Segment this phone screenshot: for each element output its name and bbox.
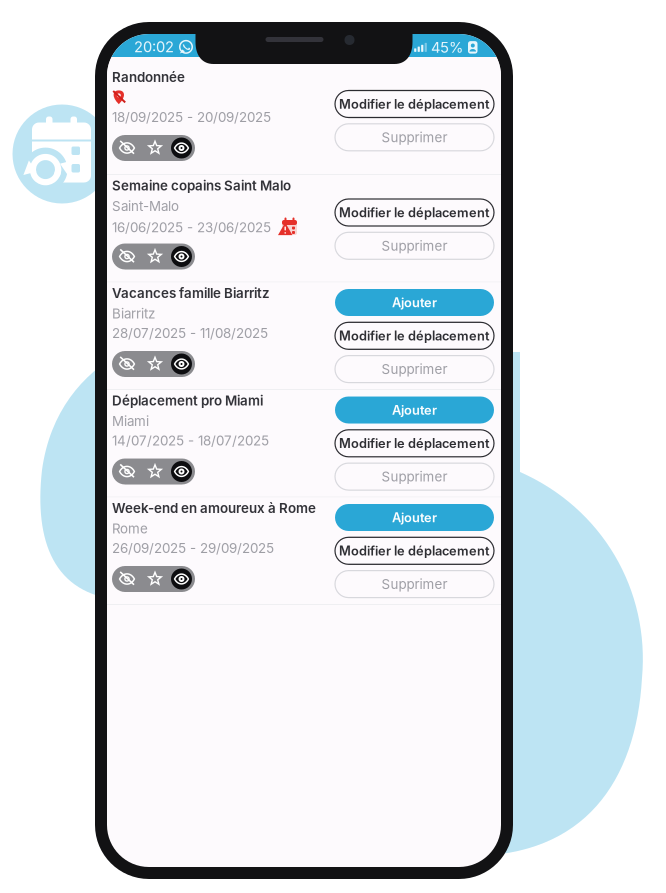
staticText: Modifier le déplacement: [339, 96, 490, 112]
staticText: 18/09/2025 - 20/09/2025: [112, 109, 271, 125]
button[interactable]: Afficher: [168, 458, 195, 484]
staticText: Saint-Malo: [112, 198, 179, 214]
staticText: Biarritz: [112, 305, 155, 322]
button[interactable]: Afficher: [168, 243, 195, 269]
staticText: Modifier le déplacement: [339, 205, 490, 220]
button[interactable]: Favori: [142, 351, 168, 377]
staticText: 45%: [431, 38, 463, 56]
button[interactable]: Modifier le déplacement: [335, 430, 494, 457]
button[interactable]: Ajouter: [335, 289, 494, 316]
button[interactable]: Masquer: [112, 458, 142, 484]
button[interactable]: Modifier le déplacement: [335, 199, 494, 226]
staticText: 20:02: [134, 38, 174, 56]
staticText: Supprimer: [381, 468, 447, 485]
button[interactable]: Masquer: [112, 566, 142, 592]
staticText: Modifier le déplacement: [339, 328, 490, 344]
staticText: Déplacement pro Miami: [112, 392, 263, 409]
button[interactable]: Modifier le déplacement: [335, 537, 494, 564]
staticText: Supprimer: [381, 129, 447, 145]
button[interactable]: Supprimer: [335, 571, 494, 598]
staticText: 16/06/2025 - 23/06/2025: [112, 219, 271, 235]
staticText: 28/07/2025 - 11/08/2025: [112, 325, 268, 341]
staticText: Semaine copains Saint Malo: [112, 177, 291, 194]
staticText: Ajouter: [392, 402, 437, 418]
button[interactable]: Masquer: [112, 351, 142, 377]
button[interactable]: Afficher: [168, 566, 195, 592]
staticText: Modifier le déplacement: [339, 436, 490, 451]
staticText: Modifier le déplacement: [339, 543, 490, 559]
button[interactable]: Supprimer: [335, 356, 494, 383]
button[interactable]: Modifier le déplacement: [335, 322, 494, 349]
button[interactable]: Favori: [142, 566, 168, 592]
staticText: Supprimer: [381, 238, 447, 254]
button[interactable]: Masquer: [112, 243, 142, 269]
staticText: Rome: [112, 520, 148, 537]
staticText: Ajouter: [392, 295, 437, 310]
button[interactable]: Afficher: [168, 351, 195, 377]
staticText: Vacances famille Biarritz: [112, 285, 270, 301]
staticText: Supprimer: [381, 361, 447, 377]
button[interactable]: Supprimer: [335, 232, 494, 259]
button[interactable]: Ajouter: [335, 396, 494, 423]
button[interactable]: Supprimer: [335, 463, 494, 490]
staticText: Randonnée: [112, 69, 185, 85]
staticText: 14/07/2025 - 18/07/2025: [112, 432, 269, 449]
button[interactable]: Supprimer: [335, 124, 494, 151]
button[interactable]: Favori: [142, 458, 168, 484]
button[interactable]: Modifier le déplacement: [335, 90, 494, 117]
staticText: Week-end en amoureux à Rome: [112, 500, 316, 516]
button[interactable]: Ajouter: [335, 504, 494, 531]
staticText: Miami: [112, 413, 149, 429]
button[interactable]: Favori: [142, 135, 168, 161]
staticText: 26/09/2025 - 29/09/2025: [112, 540, 274, 556]
staticText: Ajouter: [392, 510, 437, 525]
button[interactable]: Afficher: [168, 135, 195, 161]
staticText: Supprimer: [381, 576, 447, 592]
button[interactable]: Masquer: [112, 135, 142, 161]
button[interactable]: Favori: [142, 243, 168, 269]
